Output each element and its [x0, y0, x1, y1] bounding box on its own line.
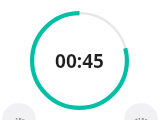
button[interactable]: Add 15 seconds	[124, 103, 158, 120]
staticText: -15s	[13, 116, 25, 120]
staticText: 00:45	[55, 48, 104, 74]
button[interactable]: Timer progress	[30, 11, 129, 110]
button[interactable]: Subtract 15 seconds	[2, 103, 36, 120]
staticText: +15s	[134, 116, 148, 120]
